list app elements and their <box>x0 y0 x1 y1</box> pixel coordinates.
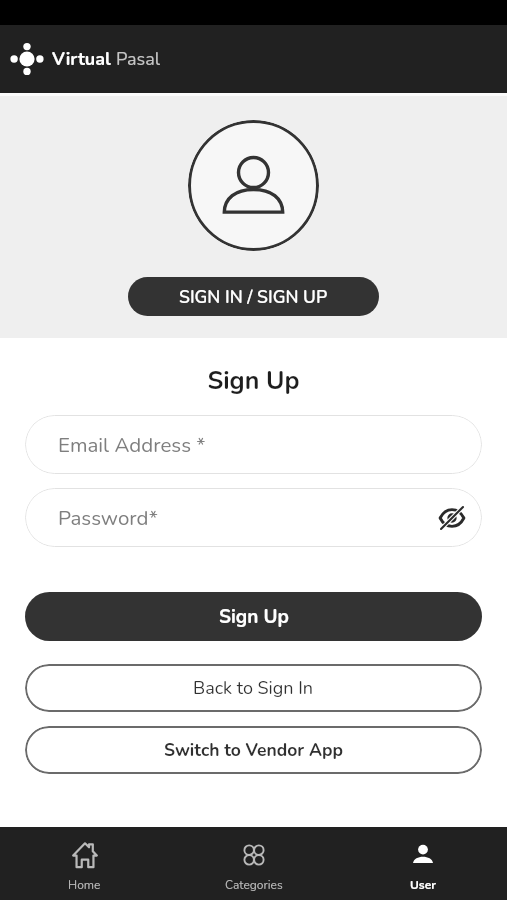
staticText: Home <box>68 877 101 893</box>
button[interactable]: User <box>338 827 507 900</box>
staticText: Categories <box>225 877 283 893</box>
staticText: Virtual <box>52 47 116 72</box>
staticText: Pasal <box>116 47 161 72</box>
staticText: Back to Sign In <box>193 676 314 701</box>
other: Virtual Pasal logo <box>13 45 41 73</box>
button[interactable]: Password* <box>25 488 482 547</box>
staticText: Sign Up <box>0 364 507 398</box>
button[interactable]: Show password <box>436 502 468 534</box>
button[interactable]: Home <box>0 827 169 900</box>
button[interactable]: Email Address * <box>25 415 482 474</box>
staticText: SIGN IN / SIGN UP <box>179 285 328 309</box>
staticText: Email Address * <box>58 431 206 459</box>
staticText: Switch to Vendor App <box>164 738 343 762</box>
button[interactable]: Switch to Vendor App <box>25 726 482 774</box>
button[interactable]: SIGN IN / SIGN UP <box>128 277 379 316</box>
staticText: Password* <box>58 504 158 532</box>
button[interactable]: Back to Sign In <box>25 664 482 712</box>
staticText: Sign Up <box>219 604 289 630</box>
button[interactable]: Categories <box>169 827 338 900</box>
staticText: User <box>410 877 436 893</box>
button[interactable]: Sign Up <box>25 592 482 641</box>
